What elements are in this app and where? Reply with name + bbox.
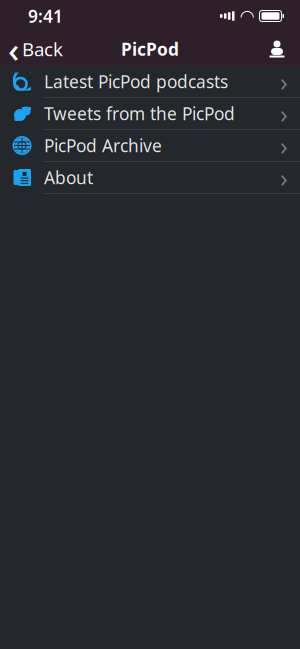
button[interactable]: Account [260, 32, 294, 66]
button[interactable]: PicPod Archive [0, 130, 300, 162]
staticText: ‹ [8, 26, 19, 72]
staticText: Back [22, 37, 63, 61]
staticText: About [44, 166, 93, 189]
staticText: › [280, 161, 288, 194]
button[interactable]: Tweets from the PicPod [0, 98, 300, 130]
staticText: Tweets from the PicPod [44, 102, 235, 125]
button[interactable]: Latest PicPod podcasts [0, 66, 300, 98]
staticText: › [280, 97, 288, 130]
staticText: › [280, 129, 288, 162]
button[interactable]: ‹ [0, 32, 73, 66]
staticText: PicPod Archive [44, 134, 162, 157]
button[interactable]: About [0, 162, 300, 194]
staticText: Latest PicPod podcasts [44, 70, 228, 93]
staticText: ◠ [240, 6, 253, 26]
staticText: 9:41 [28, 4, 63, 27]
staticText: PicPod [121, 37, 179, 60]
staticText: › [280, 65, 288, 98]
